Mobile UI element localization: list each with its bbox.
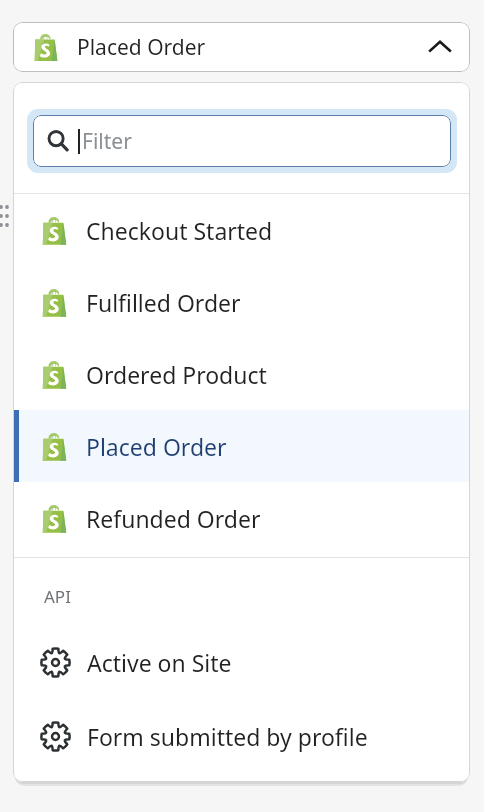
other: Collapse xyxy=(427,34,453,60)
staticText: Fulfilled Order xyxy=(86,287,241,318)
staticText: Placed Order xyxy=(86,431,227,462)
staticText: Active on Site xyxy=(87,647,232,678)
button[interactable]: Placed Order xyxy=(13,410,470,482)
button[interactable]: Refunded Order xyxy=(13,482,470,554)
staticText: Refunded Order xyxy=(86,503,261,534)
button[interactable]: Fulfilled Order xyxy=(13,266,470,338)
button[interactable]: Form submitted by profile xyxy=(13,700,470,772)
button[interactable]: Ordered Product xyxy=(13,338,470,410)
staticText: Filter xyxy=(82,127,132,156)
staticText: Form submitted by profile xyxy=(87,721,368,752)
button[interactable]: Checkout Started xyxy=(13,194,470,266)
staticText: Checkout Started xyxy=(86,215,273,246)
staticText: Ordered Product xyxy=(86,359,267,390)
button[interactable]: Placed Order xyxy=(13,22,470,72)
button[interactable]: Filter xyxy=(27,109,457,173)
staticText: API xyxy=(44,585,71,608)
button[interactable]: Active on Site xyxy=(13,626,470,698)
staticText: Placed Order xyxy=(77,33,427,62)
